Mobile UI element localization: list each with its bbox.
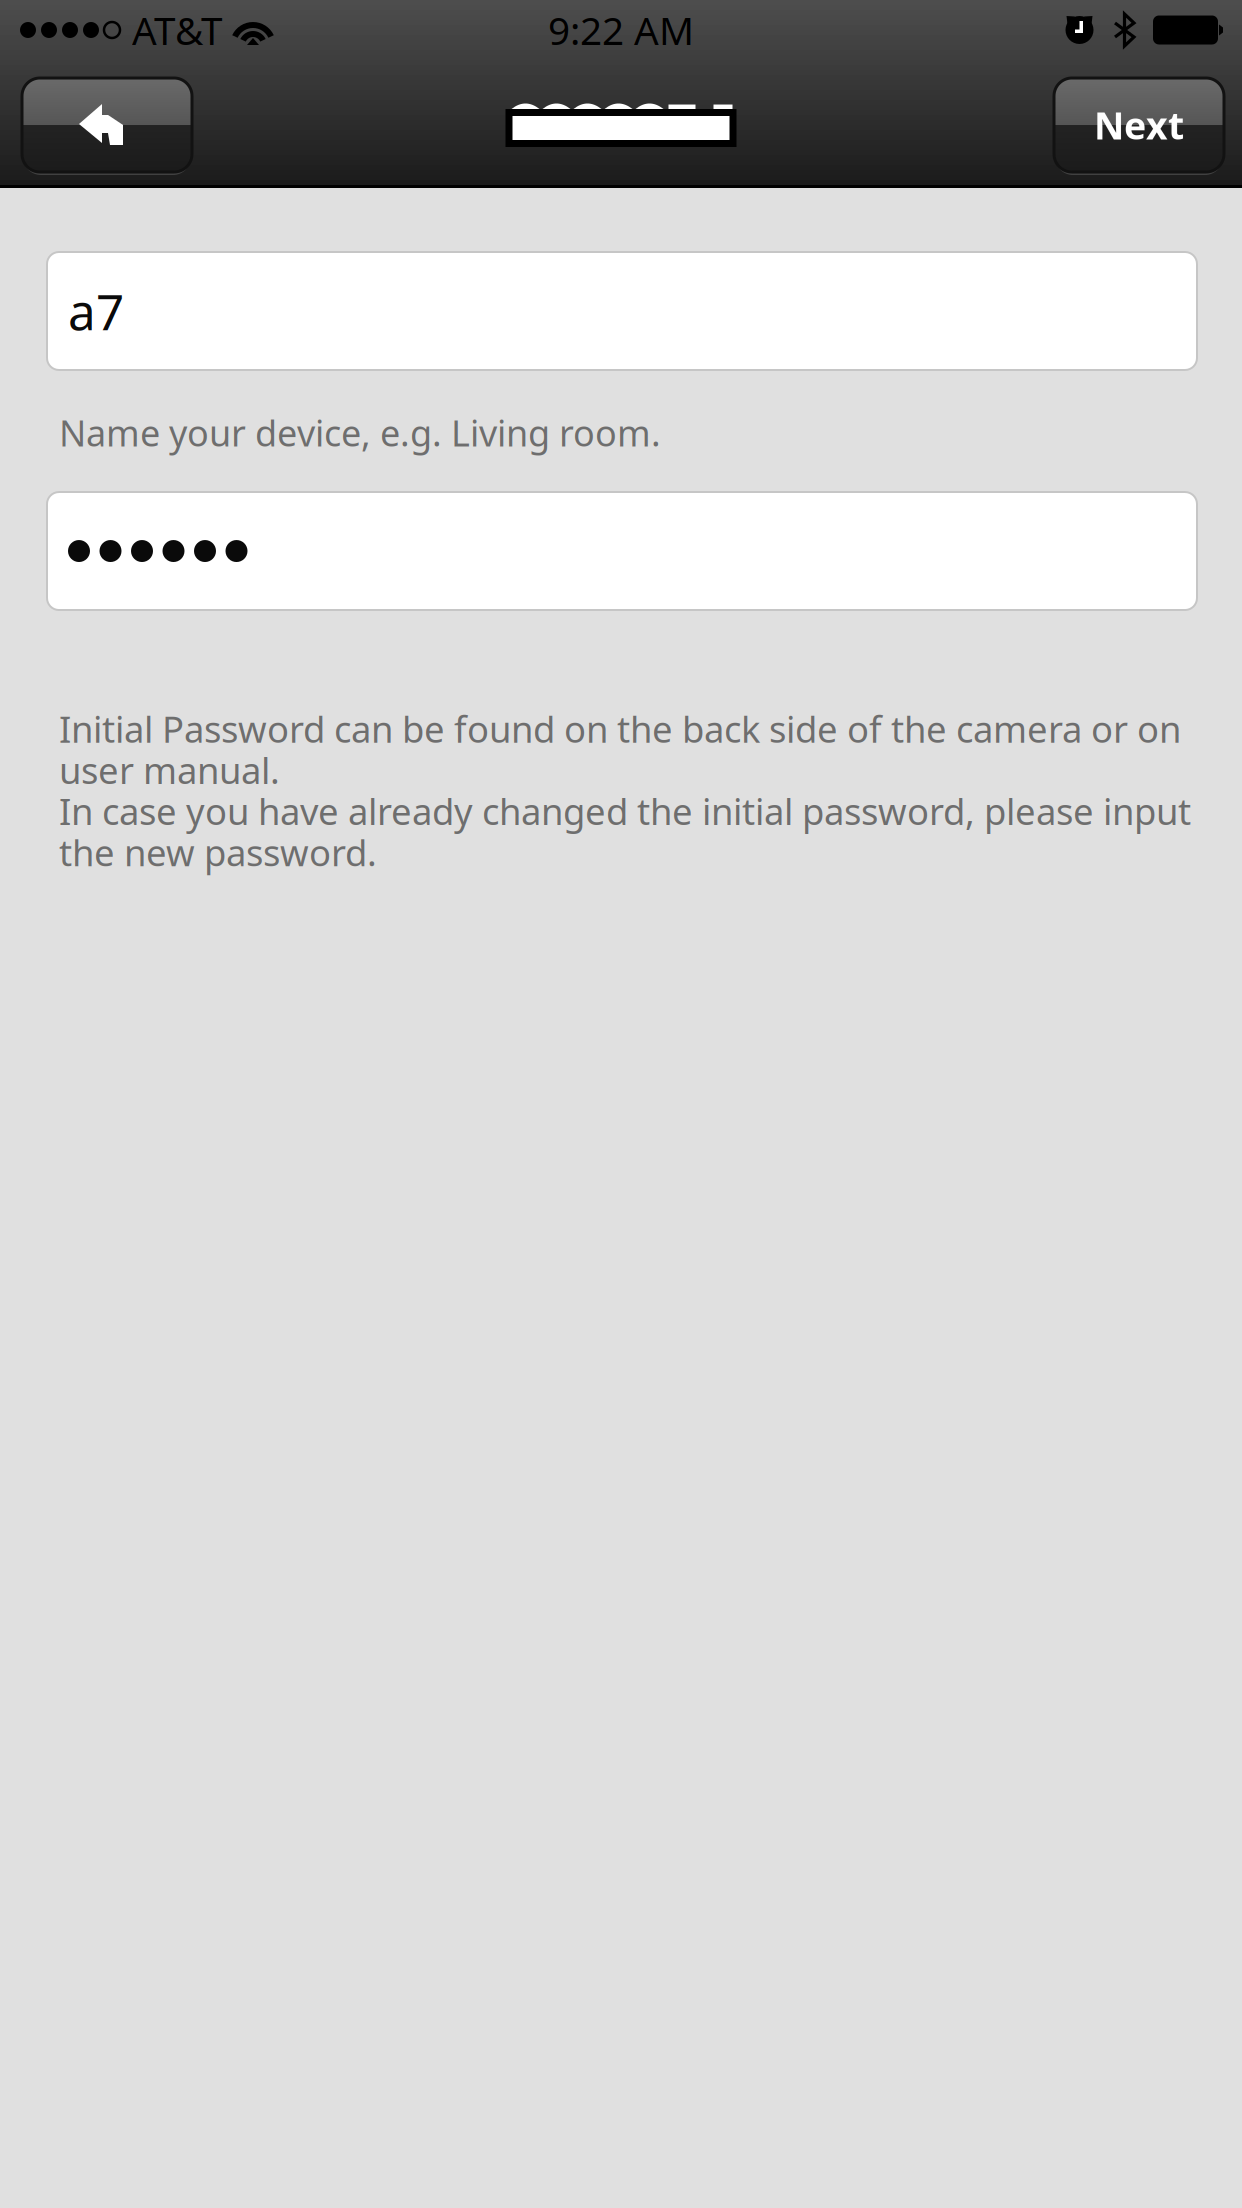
button[interactable]: a7 (47, 252, 1197, 370)
button[interactable]: Back (22, 78, 192, 172)
button[interactable] (47, 492, 1197, 610)
staticText: Name your device, e.g. Living room. (59, 408, 661, 457)
staticText: Initial Password can be found on the bac… (59, 708, 1191, 873)
staticText: AT&T (132, 4, 222, 56)
staticText: Next (1094, 100, 1184, 150)
button[interactable]: Next (1054, 78, 1224, 172)
staticText: a7 (68, 277, 124, 345)
staticText: 9:22 AM (548, 4, 694, 56)
